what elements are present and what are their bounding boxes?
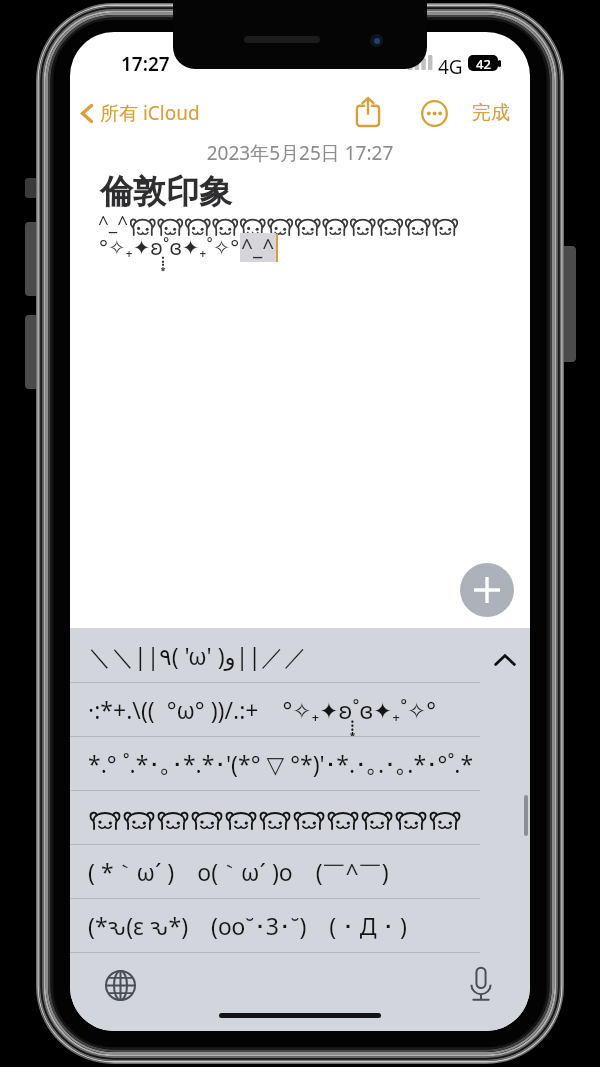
- button[interactable]: Collapse keyboard: [486, 641, 524, 679]
- button[interactable]: (*ԅ(ε ԅ*) (оо˘･3･˘) ( ･ Д ･ ): [70, 898, 530, 952]
- button[interactable]: ＼＼||٩( 'ω' )و||／／: [70, 628, 530, 682]
- button[interactable]: *.° ˚.*･｡･*.*･'(*° ▽ °*)'･*.･｡.･｡.*･°˚.*: [70, 736, 530, 790]
- staticText: *.° ˚.*･｡･*.*･'(*° ▽ °*)'･*.･｡.･｡.*･°˚.*: [88, 748, 474, 779]
- staticText: ·:*+.\(( °ω° ))/.:+ °✧₊✦ʚ˚̣̣̣͙ɞ✦₊˚✧°: [88, 694, 437, 725]
- staticText: ^_^: [98, 210, 129, 236]
- staticText: 2023年5月25日 17:27: [70, 140, 530, 166]
- staticText: (*ԅ(ε ԅ*) (оо˘･3･˘) ( ･ Д ･ ): [88, 910, 407, 941]
- button[interactable]: ( *｀ω´ ) o(｀ω´ )o (￣^￣): [70, 844, 530, 898]
- button[interactable]: Dictate: [461, 964, 501, 1004]
- staticText: 倫敦印象: [100, 171, 232, 213]
- staticText: 42: [476, 55, 491, 71]
- staticText: ＼＼||٩( 'ω' )و||／／: [88, 640, 308, 671]
- button[interactable]: ·:*+.\(( °ω° ))/.:+ °✧₊✦ʚ˚̣̣̣͙ɞ✦₊˚✧°: [70, 682, 530, 736]
- button[interactable]: Add attachment: [460, 563, 514, 617]
- button[interactable]: More options: [413, 92, 455, 134]
- staticText: 所有 iCloud: [100, 100, 200, 126]
- staticText: °✧₊✦ʚ˚̣̣̣͙ɞ✦₊˚✧°: [99, 233, 240, 262]
- button[interactable]: 完成: [466, 94, 516, 132]
- button[interactable]: Share: [347, 90, 389, 132]
- button[interactable]: Next keyboard: [100, 965, 140, 1005]
- staticText: 4G: [438, 54, 463, 80]
- button[interactable]: 所有 iCloud: [81, 94, 200, 132]
- button[interactable]: [70, 790, 530, 844]
- staticText: ^_^: [241, 233, 275, 262]
- staticText: ( *｀ω´ ) o(｀ω´ )o (￣^￣): [88, 856, 389, 887]
- staticText: 17:27: [121, 51, 170, 77]
- staticText: 完成: [472, 101, 510, 125]
